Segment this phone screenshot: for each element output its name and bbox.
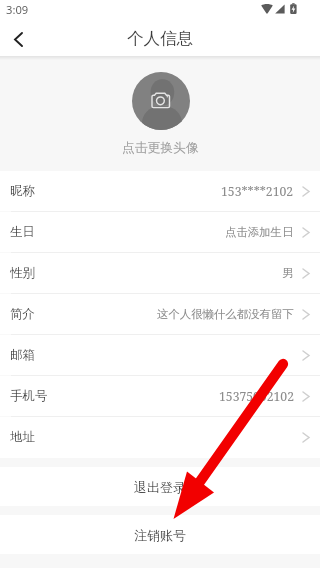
staticText: 退出登录 [134,479,186,495]
button[interactable]: 注销账号 [0,515,320,554]
staticText: 这个人很懒什么都没有留下 [157,307,294,321]
button[interactable]: 简介 [0,294,320,335]
button[interactable]: 退出登录 [0,467,320,506]
staticText: 手机号 [10,388,48,404]
staticText: 153****2102 [221,183,294,200]
staticText: 简介 [10,306,35,322]
staticText: 男 [282,266,294,280]
button[interactable]: Back [0,22,36,56]
staticText: 15375092102 [219,388,294,405]
staticText: 地址 [10,429,35,445]
staticText: 个人信息 [127,28,194,49]
button[interactable]: 邮箱 [0,335,320,376]
button[interactable]: 手机号 [0,376,320,417]
staticText: 生日 [10,224,35,240]
button[interactable]: 昵称 [0,171,320,212]
staticText: 注销账号 [134,527,186,543]
button[interactable]: 性别 [0,253,320,294]
staticText: 点击添加生日 [225,225,294,239]
button[interactable]: 地址 [0,417,320,458]
staticText: 邮箱 [10,347,35,363]
staticText: 点击更换头像 [122,140,199,156]
staticText: 性别 [10,265,35,281]
button[interactable]: 点击更换头像 [122,56,199,156]
staticText: 3:09 [6,2,29,17]
button[interactable]: 生日 [0,212,320,253]
staticText: 昵称 [10,183,35,199]
